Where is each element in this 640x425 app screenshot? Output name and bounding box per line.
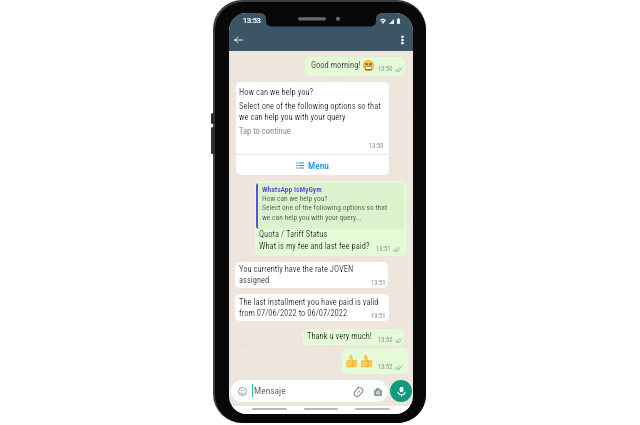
button[interactable]: Back (252, 408, 287, 410)
button[interactable]: Good morning! (305, 57, 405, 76)
button[interactable]: Recents (355, 408, 390, 410)
button[interactable]: Home (304, 408, 338, 410)
staticText: WhatsApp IsMyGym (262, 185, 322, 194)
staticText: The last installment you have paid is va… (239, 297, 385, 318)
staticText: Menu (308, 160, 329, 171)
button[interactable]: You currently have the rate JOVEN assign… (235, 262, 388, 288)
staticText: Tap to continue (239, 126, 291, 136)
button[interactable]: More options (394, 30, 411, 49)
staticText: How can we help you? (262, 194, 328, 203)
staticText: Thank u very much! (307, 331, 372, 341)
staticText: Quota / Tariff Status (259, 229, 328, 239)
button[interactable]: WhatsApp IsMyGym (255, 181, 407, 256)
staticText: 13:51 (376, 245, 391, 253)
staticText: How can we help you? (239, 87, 314, 97)
staticText: Good morning! (311, 60, 361, 70)
staticText: What is my fee and last fee paid? (259, 241, 370, 251)
staticText: 13:50 (378, 65, 393, 73)
staticText: You currently have the rate JOVEN assign… (239, 264, 383, 285)
staticText: 13:51 (371, 312, 386, 320)
staticText: Select one of the following options so t… (239, 101, 385, 122)
staticText: 13:52 (378, 363, 393, 371)
staticText: 13:50 (369, 142, 384, 150)
staticText: Select one of the following options so t… (262, 203, 396, 222)
button[interactable]: 13:52 (342, 348, 408, 374)
button[interactable]: Mensaje (231, 380, 388, 402)
staticText: 13:53 (243, 16, 261, 24)
staticText: 13:52 (378, 336, 393, 344)
button[interactable]: Back (230, 30, 246, 49)
staticText: 13:51 (371, 279, 386, 287)
button[interactable]: Voice message (390, 380, 412, 402)
button[interactable]: Thank u very much! (302, 329, 404, 345)
staticText: Mensaje (254, 385, 286, 396)
button[interactable]: The last installment you have paid is va… (235, 294, 389, 321)
button[interactable]: Menu (236, 155, 389, 175)
